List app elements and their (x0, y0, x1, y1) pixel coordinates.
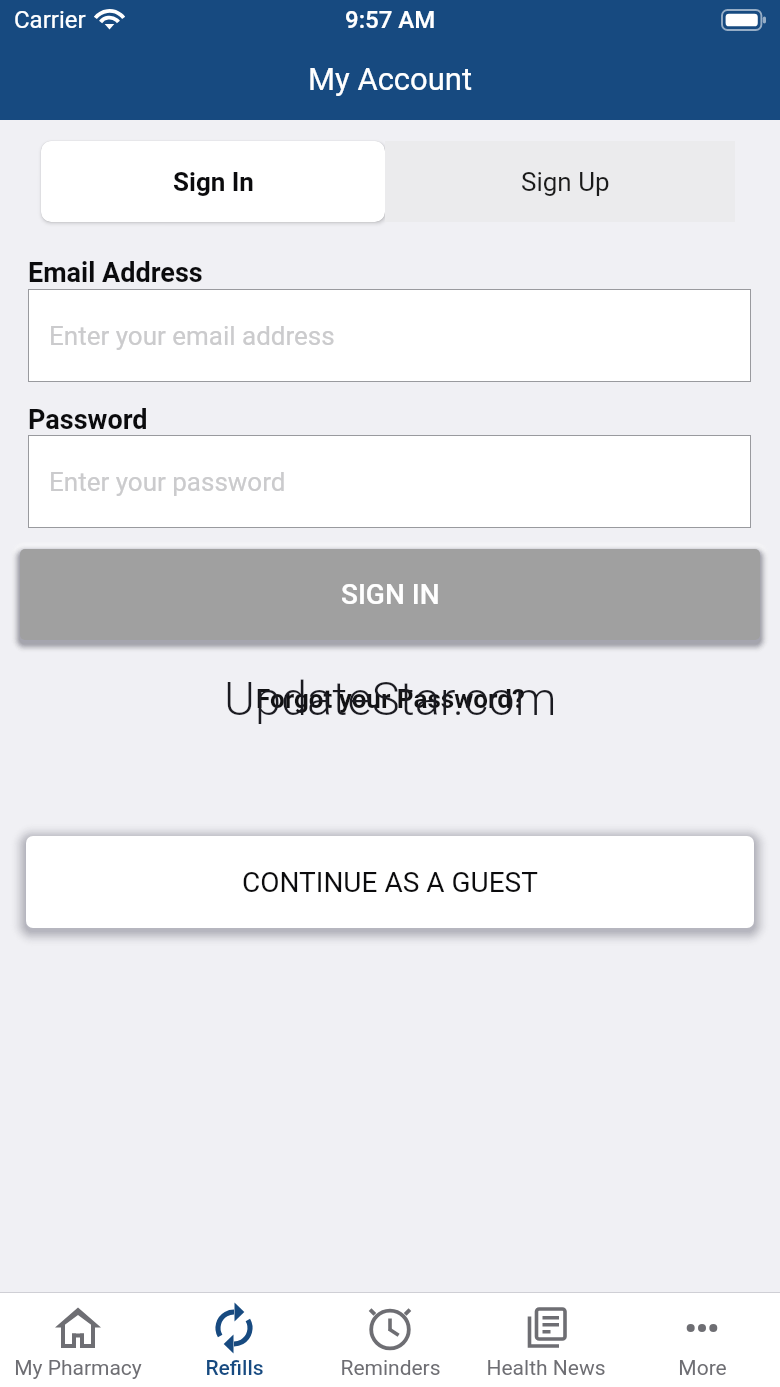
button[interactable]: Health News (468, 1293, 624, 1387)
button[interactable]: Enter your password (28, 435, 751, 528)
staticText: 9:57 AM (345, 6, 436, 34)
staticText: Reminders (340, 1356, 441, 1381)
staticText: Carrier (14, 6, 86, 34)
staticText: Health News (486, 1356, 606, 1381)
staticText: My Account (308, 61, 473, 97)
staticText: Email Address (28, 257, 203, 289)
button[interactable]: Refills (156, 1293, 312, 1387)
button[interactable]: Forgot your Password? (256, 684, 525, 714)
staticText: Sign In (173, 167, 254, 197)
staticText: Sign Up (521, 167, 610, 197)
button[interactable]: My Pharmacy (0, 1293, 156, 1387)
staticText: UpdateStar.com (224, 671, 557, 726)
staticText: Enter your email address (49, 321, 335, 351)
button[interactable]: Sign In (41, 141, 385, 222)
staticText: SIGN IN (341, 578, 440, 611)
staticText: Password (28, 404, 148, 436)
button[interactable]: SIGN IN (20, 549, 760, 640)
button[interactable]: Enter your email address (28, 289, 751, 382)
button[interactable]: More (624, 1293, 780, 1387)
button[interactable]: Reminders (312, 1293, 468, 1387)
staticText: CONTINUE AS A GUEST (242, 866, 538, 899)
staticText: My Pharmacy (14, 1356, 142, 1381)
button[interactable]: Sign Up (385, 141, 735, 222)
staticText: More (678, 1356, 727, 1381)
staticText: Enter your password (49, 467, 286, 497)
staticText: Refills (205, 1356, 264, 1381)
button[interactable]: CONTINUE AS A GUEST (26, 836, 754, 928)
